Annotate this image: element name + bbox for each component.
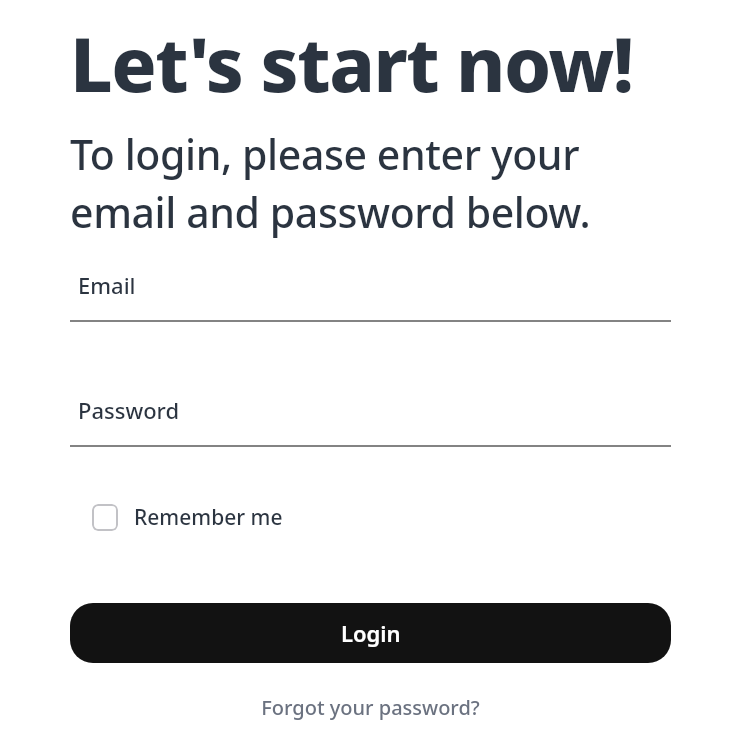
button[interactable]: Login xyxy=(70,603,671,663)
staticText: Remember me xyxy=(134,503,283,532)
staticText: To login, please enter your email and pa… xyxy=(70,126,591,240)
staticText: Let's start now! xyxy=(70,12,633,114)
staticText: Forgot your password? xyxy=(261,694,480,721)
staticText: Login xyxy=(341,618,401,648)
staticText: Email xyxy=(78,270,136,300)
button[interactable]: Forgot your password? xyxy=(255,691,486,724)
button[interactable]: Remember me xyxy=(90,499,285,536)
button[interactable]: Password xyxy=(70,395,671,447)
staticText: Password xyxy=(78,395,180,425)
button[interactable]: Email xyxy=(70,270,671,322)
